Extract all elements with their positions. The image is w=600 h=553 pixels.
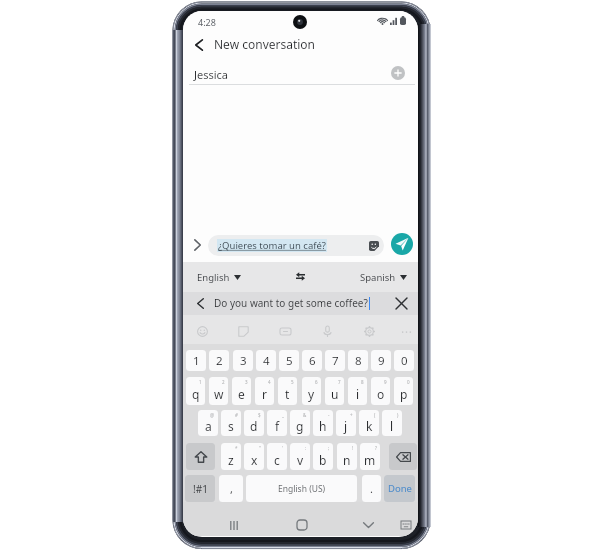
button[interactable]: Stickers [367, 239, 380, 252]
button[interactable]: Shift [186, 443, 215, 470]
button[interactable]: !#1 [185, 475, 215, 502]
button[interactable]: . [362, 475, 381, 502]
button[interactable]: 3 [232, 377, 251, 405]
button[interactable]: Recent apps [225, 516, 243, 534]
button[interactable]: 1 [186, 377, 205, 405]
button[interactable]: 6 [302, 377, 321, 405]
staticText: New conversation [214, 36, 316, 52]
staticText: u [331, 386, 339, 402]
staticText: 9 [384, 379, 387, 385]
staticText: , [230, 481, 233, 496]
staticText: t [285, 386, 290, 402]
staticText: " [259, 445, 261, 451]
staticText: !#1 [193, 482, 208, 496]
staticText: @ [210, 412, 215, 418]
button[interactable]: Spanish [358, 269, 409, 286]
staticText: 0 [401, 353, 408, 369]
staticText: # [235, 412, 238, 418]
button[interactable]: 2 [209, 350, 229, 371]
button[interactable]: ( [359, 410, 379, 436]
button[interactable]: * [221, 443, 241, 470]
staticText: Do you want to get some coffee? [214, 296, 368, 310]
button[interactable]: 9 [371, 350, 391, 371]
button[interactable]: , [219, 475, 243, 502]
staticText: $ [258, 412, 261, 418]
button[interactable]: Send [391, 233, 413, 255]
button[interactable]: 7 [325, 350, 345, 371]
button[interactable]: ; [313, 443, 333, 470]
button[interactable]: ) [382, 410, 402, 436]
button[interactable]: GIF keyboard [277, 323, 293, 339]
button[interactable]: 8 [348, 377, 367, 405]
button[interactable]: Clear text [392, 294, 410, 312]
button[interactable]: Keyboard settings [361, 323, 377, 339]
button[interactable]: Back [189, 35, 208, 54]
button[interactable]: ! [337, 443, 357, 470]
staticText: i [356, 386, 360, 402]
button[interactable]: 9 [371, 377, 390, 405]
staticText: 2 [222, 379, 225, 385]
button[interactable]: ? [360, 443, 380, 470]
button[interactable]: 8 [348, 350, 368, 371]
button[interactable]: ' [267, 443, 287, 470]
button[interactable]: 7 [325, 377, 344, 405]
staticText: 7 [338, 379, 341, 385]
staticText: & [303, 412, 307, 418]
button[interactable]: More options [398, 323, 414, 339]
button[interactable]: _ [267, 410, 287, 436]
staticText: m [364, 452, 376, 468]
button[interactable]: ¿Quieres tomar un café? [208, 235, 384, 256]
staticText: 7 [332, 353, 339, 369]
button[interactable]: & [290, 410, 310, 436]
staticText: g [296, 418, 304, 434]
button[interactable]: 1 [186, 350, 206, 371]
staticText: j [344, 418, 348, 434]
button[interactable]: 5 [278, 377, 297, 405]
button[interactable]: English [195, 269, 243, 286]
button[interactable]: - [313, 410, 333, 436]
button[interactable]: 0 [394, 350, 414, 371]
button[interactable]: Show more options [188, 235, 207, 254]
staticText: English (US) [278, 483, 326, 495]
staticText: 5 [291, 379, 294, 385]
button[interactable]: 3 [233, 350, 253, 371]
button[interactable]: Emoji [194, 323, 210, 339]
staticText: 4 [268, 379, 271, 385]
button[interactable]: 6 [302, 350, 322, 371]
staticText: r [262, 386, 267, 402]
button[interactable]: Keyboard layout [397, 516, 415, 534]
button[interactable]: Home [293, 516, 311, 534]
button[interactable]: $ [244, 410, 264, 436]
button[interactable]: Backspace [389, 443, 417, 470]
button[interactable]: Add recipient [391, 66, 405, 80]
button[interactable]: Voice input [319, 323, 335, 339]
staticText: w [214, 386, 224, 402]
staticText: a [205, 418, 212, 434]
button[interactable]: # [221, 410, 241, 436]
button[interactable]: + [336, 410, 356, 436]
staticText: + [350, 412, 353, 418]
button[interactable]: Stickers [235, 323, 251, 339]
staticText: * [235, 445, 238, 451]
staticText: ) [397, 412, 399, 418]
button[interactable]: 5 [279, 350, 299, 371]
staticText: English [197, 271, 230, 284]
staticText: f [275, 418, 280, 434]
button[interactable]: 4 [255, 377, 274, 405]
button[interactable]: 0 [394, 377, 413, 405]
button[interactable]: @ [198, 410, 218, 436]
button[interactable]: " [244, 443, 264, 470]
staticText: _ [282, 412, 284, 418]
button[interactable]: 2 [209, 377, 228, 405]
button[interactable]: Done [384, 475, 415, 502]
staticText: 4 [263, 353, 270, 369]
button[interactable]: English (US) [246, 475, 357, 502]
button[interactable]: 4 [256, 350, 276, 371]
button[interactable]: Hide keyboard [359, 516, 377, 534]
button[interactable]: : [290, 443, 310, 470]
button[interactable]: Previous suggestion [192, 295, 209, 312]
button[interactable]: Swap languages [292, 268, 309, 285]
staticText: 8 [355, 353, 362, 369]
staticText: 6 [315, 379, 318, 385]
staticText: p [400, 386, 408, 402]
